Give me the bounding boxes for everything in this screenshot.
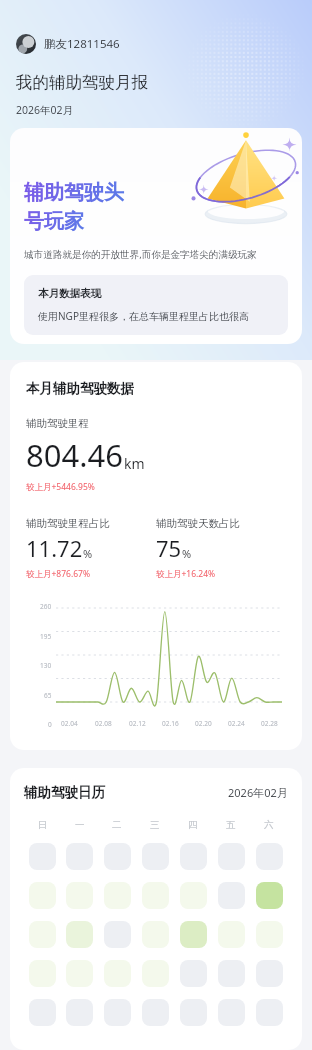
button[interactable]: Day cell [256, 921, 283, 948]
button[interactable]: Day cell [142, 960, 169, 987]
staticText: 2026年02月 [228, 785, 288, 800]
staticText: 65 [44, 691, 52, 700]
button[interactable]: Day cell [256, 882, 283, 909]
staticText: 02.08 [95, 719, 112, 728]
staticText: 较上月+16.24% [156, 568, 216, 580]
staticText: 辅助驾驶日历 [24, 784, 105, 801]
button[interactable]: Day cell [142, 921, 169, 948]
staticText: 五 [226, 819, 236, 831]
staticText: 使用NGP里程很多，在总车辆里程里占比也很高 [38, 309, 249, 323]
button[interactable]: Day cell [142, 999, 169, 1026]
button[interactable]: Day cell [180, 882, 207, 909]
button[interactable]: Day cell [66, 921, 93, 948]
button[interactable]: Day cell [180, 843, 207, 870]
staticText: 11.72 [26, 533, 83, 563]
staticText: % [182, 546, 192, 561]
staticText: 0 [48, 720, 52, 729]
staticText: 四 [188, 819, 198, 831]
button[interactable]: Day cell [256, 999, 283, 1026]
button[interactable]: 鹏友12811546 [16, 34, 120, 54]
button[interactable]: Day cell [66, 882, 93, 909]
button[interactable]: Day cell [256, 960, 283, 987]
staticText: 130 [40, 661, 52, 670]
staticText: 我的辅助驾驶月报 [16, 72, 148, 93]
staticText: 二 [112, 819, 122, 831]
staticText: 02.28 [261, 719, 278, 728]
staticText: 辅助驾驶里程占比 [26, 517, 110, 530]
button[interactable]: Day cell [218, 843, 245, 870]
button[interactable]: Day cell [104, 921, 131, 948]
staticText: 02.16 [162, 719, 179, 728]
staticText: km [124, 454, 145, 473]
button[interactable]: Day cell [29, 999, 56, 1026]
button[interactable]: Day cell [180, 999, 207, 1026]
button[interactable]: Day cell [104, 882, 131, 909]
button[interactable]: Day cell [180, 960, 207, 987]
staticText: 02.12 [129, 719, 146, 728]
button[interactable]: Day cell [29, 882, 56, 909]
staticText: % [83, 546, 93, 561]
staticText: 75 [156, 533, 182, 563]
button[interactable]: Day cell [142, 882, 169, 909]
staticText: 三 [150, 819, 160, 831]
staticText: 本月辅助驾驶数据 [26, 380, 134, 397]
staticText: 辅助驾驶头 [24, 180, 124, 205]
button[interactable]: Day cell [180, 921, 207, 948]
staticText: 六 [264, 819, 274, 831]
staticText: 195 [40, 632, 52, 641]
button[interactable]: Day cell [66, 960, 93, 987]
staticText: 260 [40, 602, 52, 611]
staticText: 较上月+5446.95% [26, 481, 95, 493]
staticText: 2026年02月 [16, 103, 74, 117]
staticText: 较上月+876.67% [26, 568, 91, 580]
staticText: 辅助驾驶里程 [26, 417, 89, 430]
button[interactable]: Day cell [218, 921, 245, 948]
staticText: 02.20 [195, 719, 212, 728]
button[interactable]: Day cell [142, 843, 169, 870]
button[interactable]: Day cell [218, 882, 245, 909]
button[interactable]: Day cell [29, 960, 56, 987]
staticText: 辅助驾驶天数占比 [156, 517, 240, 530]
button[interactable]: Day cell [29, 921, 56, 948]
button[interactable]: Day cell [29, 843, 56, 870]
staticText: 804.46 [26, 434, 123, 476]
staticText: 日 [38, 819, 48, 831]
staticText: 本月数据表现 [38, 287, 101, 300]
button[interactable]: Day cell [256, 843, 283, 870]
button[interactable]: Day cell [104, 843, 131, 870]
staticText: 02.04 [61, 719, 78, 728]
button[interactable]: Day cell [66, 999, 93, 1026]
button[interactable]: Day cell [104, 960, 131, 987]
staticText: 城市道路就是你的开放世界,而你是金字塔尖的满级玩家 [24, 248, 257, 261]
staticText: 鹏友12811546 [44, 36, 120, 52]
button[interactable]: Day cell [218, 999, 245, 1026]
button[interactable]: Day cell [218, 960, 245, 987]
staticText: 一 [75, 819, 85, 831]
staticText: 号玩家 [24, 209, 84, 234]
button[interactable]: Day cell [66, 843, 93, 870]
staticText: 02.24 [228, 719, 245, 728]
button[interactable]: Day cell [104, 999, 131, 1026]
button[interactable]: 本月数据表现 [24, 275, 288, 335]
